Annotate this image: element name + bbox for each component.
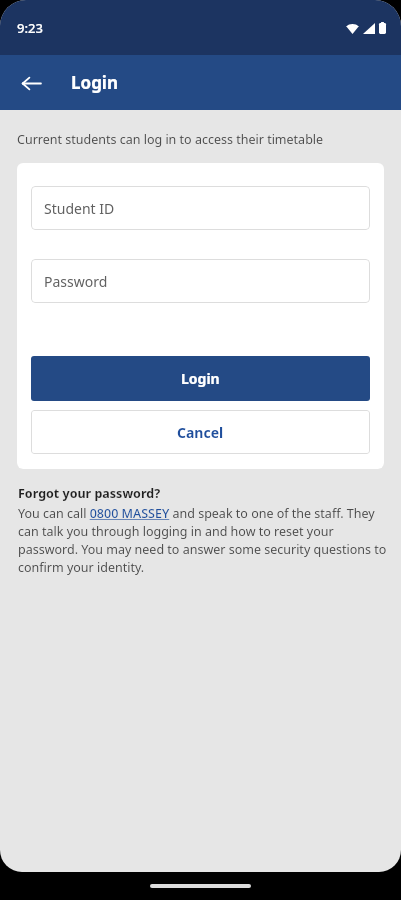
button[interactable]: Login (31, 356, 370, 401)
staticText: Current students can log in to access th… (17, 131, 324, 148)
staticText: Password (44, 272, 108, 291)
staticText: You can call 0800 MASSEY and speak to on… (18, 505, 387, 576)
button[interactable]: Back (10, 62, 52, 104)
button[interactable]: Cancel (31, 410, 370, 454)
staticText: Student ID (44, 199, 115, 218)
staticText: Cancel (177, 423, 224, 442)
staticText: Forgot your password? (18, 485, 161, 502)
staticText: 9:23 (17, 19, 43, 37)
button[interactable]: Student ID (31, 186, 370, 230)
staticText: Login (71, 71, 119, 94)
button[interactable]: Password (31, 259, 370, 303)
staticText: Login (181, 369, 220, 388)
